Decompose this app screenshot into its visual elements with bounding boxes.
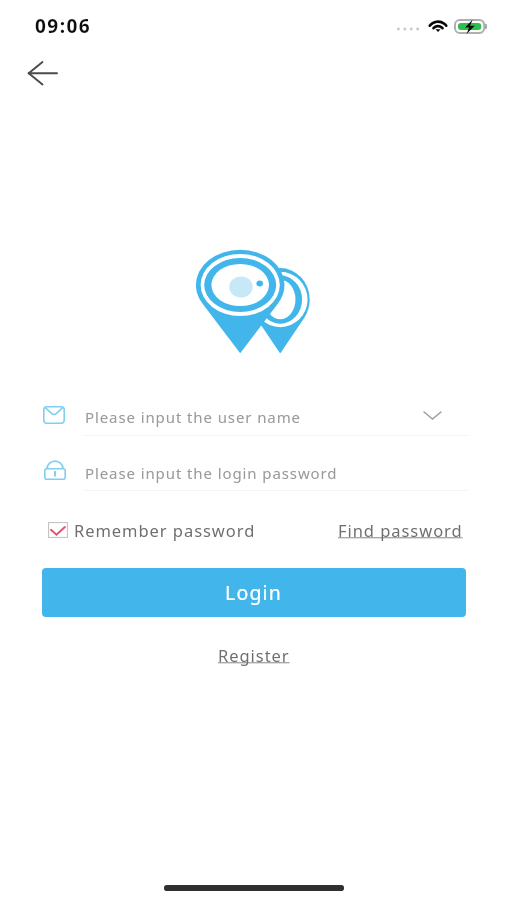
button[interactable]: Login — [42, 568, 466, 617]
button[interactable]: Register — [210, 641, 298, 669]
staticText: Find password — [338, 519, 463, 541]
staticText: Please input the user name — [85, 407, 301, 427]
staticText: 09:06 — [35, 13, 92, 39]
button[interactable]: Back — [8, 50, 54, 96]
staticText: Login — [225, 579, 283, 606]
staticText: Register — [218, 644, 290, 666]
button[interactable]: Remember password — [48, 517, 256, 543]
button[interactable]: Choose account — [415, 403, 450, 428]
staticText: Remember password — [74, 519, 256, 541]
button[interactable]: Find password — [330, 517, 471, 543]
staticText: Please input the login password — [85, 463, 338, 483]
